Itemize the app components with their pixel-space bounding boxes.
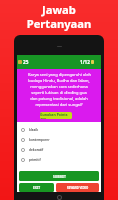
staticText: dan patung tradisional, adalah bbox=[30, 96, 88, 102]
staticText: SUBMIT bbox=[53, 174, 66, 178]
button[interactable]: dekoratif bbox=[21, 145, 101, 155]
staticText: menggunakan cara sederhana bbox=[30, 84, 88, 90]
staticText: 1/12 bbox=[80, 59, 90, 65]
button[interactable]: klasik bbox=[21, 125, 101, 135]
staticText: Jawab Pertanyaan bbox=[0, 2, 118, 31]
staticText: Gunakan Points 400 bbox=[40, 112, 72, 119]
button[interactable]: Gunakan Points 400 bbox=[40, 112, 72, 119]
staticText: klasik bbox=[29, 128, 39, 132]
button[interactable]: kontemporer bbox=[21, 135, 101, 145]
staticText: budaya Hindu, Budha dan Islam, bbox=[28, 78, 90, 84]
staticText: representasi dari sungai? bbox=[35, 102, 83, 108]
button[interactable]: primitif bbox=[21, 155, 101, 165]
staticText: kontemporer bbox=[29, 138, 50, 142]
staticText: seperti lukisan di dinding gua bbox=[31, 90, 87, 96]
button[interactable]: SUBMIT bbox=[19, 171, 99, 181]
staticText: EXIT bbox=[33, 186, 40, 190]
button[interactable]: EXIT bbox=[19, 183, 54, 192]
staticText: dekoratif bbox=[29, 148, 44, 152]
staticText: REWARD VIDEO bbox=[67, 186, 89, 190]
staticText: primitif bbox=[29, 158, 41, 162]
button[interactable]: REWARD VIDEO bbox=[56, 183, 99, 192]
staticText: Karya seni yang dipengaruhi oleh bbox=[28, 72, 91, 78]
staticText: 25 bbox=[23, 59, 29, 66]
